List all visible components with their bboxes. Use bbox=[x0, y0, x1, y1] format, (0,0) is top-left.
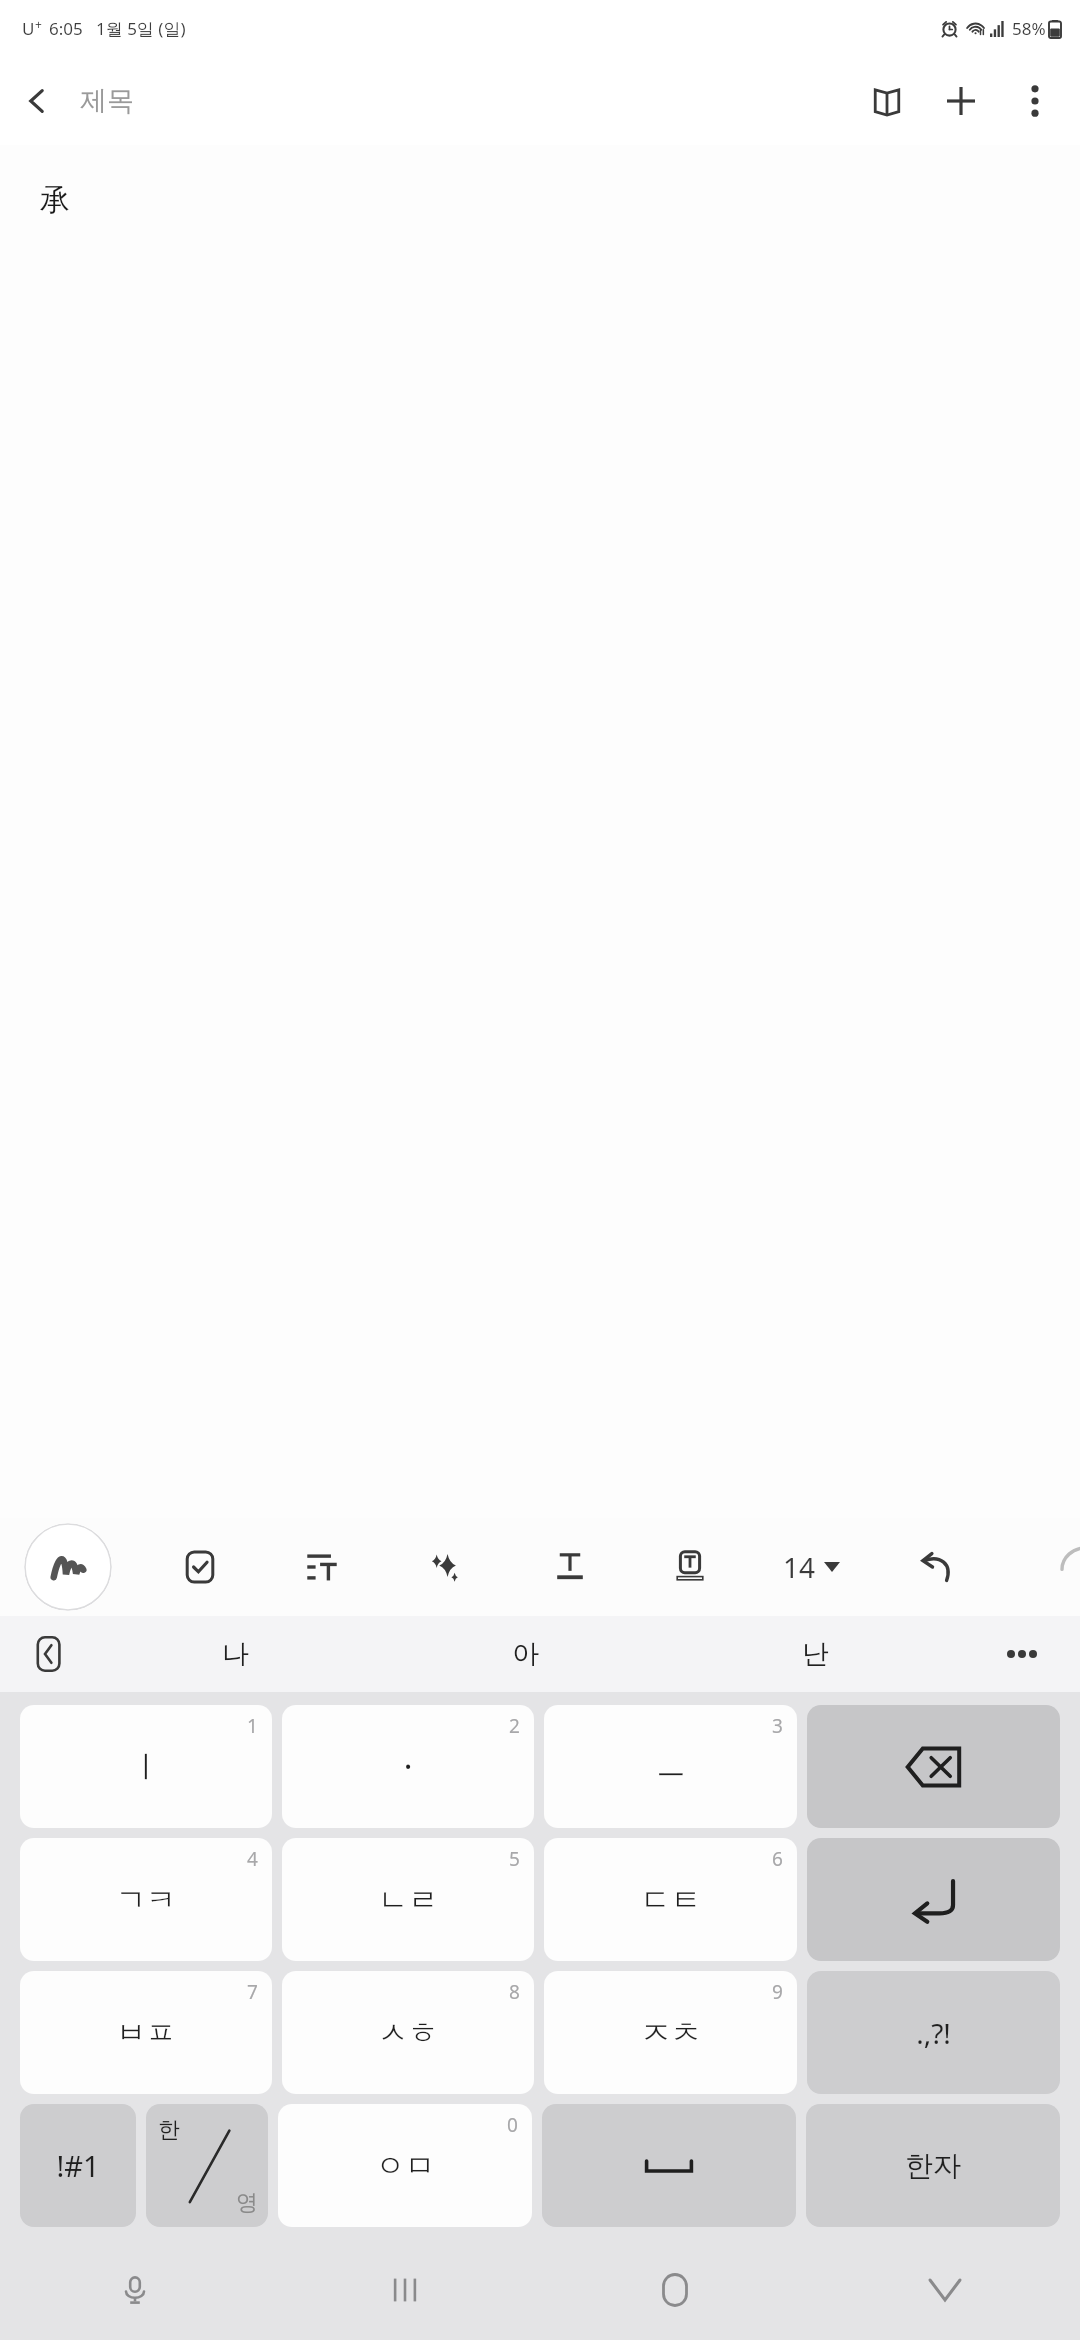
staticText: 제목 bbox=[80, 84, 134, 118]
button[interactable]: 한자 bbox=[806, 2104, 1060, 2227]
button[interactable]: Add bbox=[924, 64, 998, 138]
staticText: 나 bbox=[222, 1637, 249, 1671]
button[interactable]: Enter bbox=[807, 1838, 1060, 1961]
button[interactable]: Text style bbox=[533, 1530, 607, 1604]
button[interactable]: 6 bbox=[544, 1838, 797, 1961]
staticText: · bbox=[404, 1746, 413, 1787]
button[interactable]: Korean English toggle bbox=[146, 2104, 268, 2227]
staticText: 2 bbox=[509, 1713, 520, 1739]
staticText: 7 bbox=[247, 1979, 258, 2005]
button[interactable]: 8 bbox=[282, 1971, 534, 2094]
button[interactable]: Backspace bbox=[807, 1705, 1060, 1828]
button[interactable]: .,?! bbox=[807, 1971, 1060, 2094]
staticText: 영 bbox=[236, 2189, 258, 2217]
button[interactable]: Home bbox=[540, 2240, 810, 2340]
staticText: ㄴㄹ bbox=[378, 1881, 438, 1919]
button[interactable]: Reading mode bbox=[850, 64, 924, 138]
staticText: !#1 bbox=[56, 2146, 100, 2185]
staticText: 6:05 bbox=[49, 17, 83, 40]
button[interactable]: More options bbox=[998, 64, 1072, 138]
button[interactable]: 제목 bbox=[74, 84, 150, 118]
button[interactable]: 아 bbox=[380, 1616, 670, 1692]
staticText: ㅂㅍ bbox=[116, 2014, 176, 2052]
button[interactable]: 14 bbox=[775, 1536, 848, 1598]
staticText: 한자 bbox=[905, 2148, 961, 2183]
button[interactable]: Space bbox=[542, 2104, 796, 2227]
staticText: 3 bbox=[772, 1713, 783, 1739]
button[interactable]: Paragraph style bbox=[285, 1530, 359, 1604]
button[interactable]: Handwriting bbox=[24, 1523, 112, 1611]
staticText: ㅡ bbox=[656, 1748, 686, 1786]
staticText: ㄱㅋ bbox=[116, 1881, 176, 1919]
button[interactable]: Undo bbox=[900, 1530, 974, 1604]
staticText: 5 bbox=[509, 1846, 520, 1872]
staticText: 9 bbox=[772, 1979, 783, 2005]
staticText: 아 bbox=[512, 1637, 539, 1671]
button[interactable]: 7 bbox=[20, 1971, 272, 2094]
button[interactable]: Previous suggestions bbox=[28, 1633, 70, 1675]
staticText: ㅅㅎ bbox=[378, 2014, 438, 2052]
button[interactable]: 난 bbox=[670, 1616, 960, 1692]
staticText: .,?! bbox=[916, 2014, 951, 2052]
button[interactable]: 0 bbox=[278, 2104, 532, 2227]
staticText: 난 bbox=[802, 1637, 829, 1671]
button[interactable]: Recents bbox=[270, 2240, 540, 2340]
staticText: ㅣ bbox=[131, 1748, 161, 1786]
staticText: 1월 5일 (일) bbox=[96, 17, 186, 40]
staticText: 8 bbox=[509, 1979, 520, 2005]
button[interactable]: 4 bbox=[20, 1838, 272, 1961]
button[interactable]: Back bbox=[0, 64, 74, 138]
staticText: 14 bbox=[783, 1548, 816, 1586]
button[interactable]: 3 bbox=[544, 1705, 797, 1828]
staticText: 4 bbox=[247, 1846, 258, 1872]
staticText: 58% bbox=[1012, 17, 1046, 40]
button[interactable]: !#1 bbox=[20, 2104, 136, 2227]
staticText: ㄷㅌ bbox=[641, 1881, 701, 1919]
button[interactable]: Voice input bbox=[0, 2240, 270, 2340]
button[interactable]: More suggestions bbox=[998, 1630, 1046, 1678]
staticText: 0 bbox=[507, 2112, 518, 2138]
button[interactable]: 9 bbox=[544, 1971, 797, 2094]
staticText: 한 bbox=[158, 2116, 180, 2144]
staticText: 承 bbox=[40, 181, 70, 219]
staticText: 6 bbox=[772, 1846, 783, 1872]
staticText: + bbox=[35, 16, 42, 32]
staticText: 1 bbox=[247, 1713, 258, 1739]
button[interactable]: Checklist bbox=[163, 1530, 237, 1604]
button[interactable]: 5 bbox=[282, 1838, 534, 1961]
button[interactable]: 나 bbox=[90, 1616, 380, 1692]
button[interactable]: AI assist bbox=[408, 1530, 482, 1604]
button[interactable]: 1 bbox=[20, 1705, 272, 1828]
staticText: ㅇㅁ bbox=[375, 2147, 435, 2185]
button[interactable]: Text background bbox=[653, 1530, 727, 1604]
staticText: ㅈㅊ bbox=[641, 2014, 701, 2052]
staticText: U bbox=[22, 17, 35, 40]
button[interactable]: Hide keyboard bbox=[810, 2240, 1080, 2340]
button[interactable]: 2 bbox=[282, 1705, 534, 1828]
